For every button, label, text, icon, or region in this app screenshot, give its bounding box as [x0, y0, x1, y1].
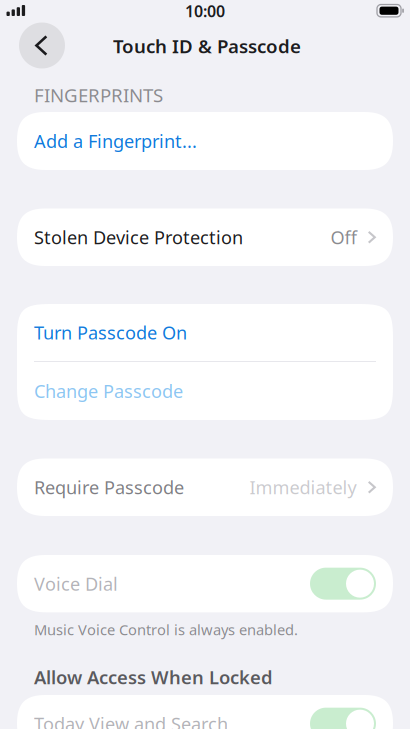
button[interactable]: Add a Fingerprint...	[17, 112, 393, 170]
button[interactable]: Turn Passcode On	[17, 304, 393, 361]
staticText: Turn Passcode On	[34, 320, 187, 345]
staticText: Add a Fingerprint...	[34, 129, 197, 153]
button[interactable]: Change Passcode	[17, 362, 393, 420]
staticText: FINGERPRINTS	[34, 83, 163, 107]
staticText: Touch ID & Passcode	[113, 34, 301, 58]
staticText: Require Passcode	[34, 475, 184, 499]
staticText: Immediately	[249, 475, 356, 499]
staticText: Allow Access When Locked	[34, 665, 273, 689]
button[interactable]: Back	[19, 22, 65, 68]
button[interactable]: Require Passcode	[17, 458, 393, 516]
staticText: Stolen Device Protection	[34, 225, 243, 249]
staticText: Today View and Search	[34, 712, 228, 729]
staticText: 10:00	[185, 0, 225, 22]
staticText: Change Passcode	[34, 379, 183, 403]
staticText: Off	[330, 225, 356, 249]
staticText: Voice Dial	[34, 572, 118, 596]
button[interactable]: Stolen Device Protection	[17, 208, 393, 266]
staticText: Music Voice Control is always enabled.	[34, 620, 298, 639]
